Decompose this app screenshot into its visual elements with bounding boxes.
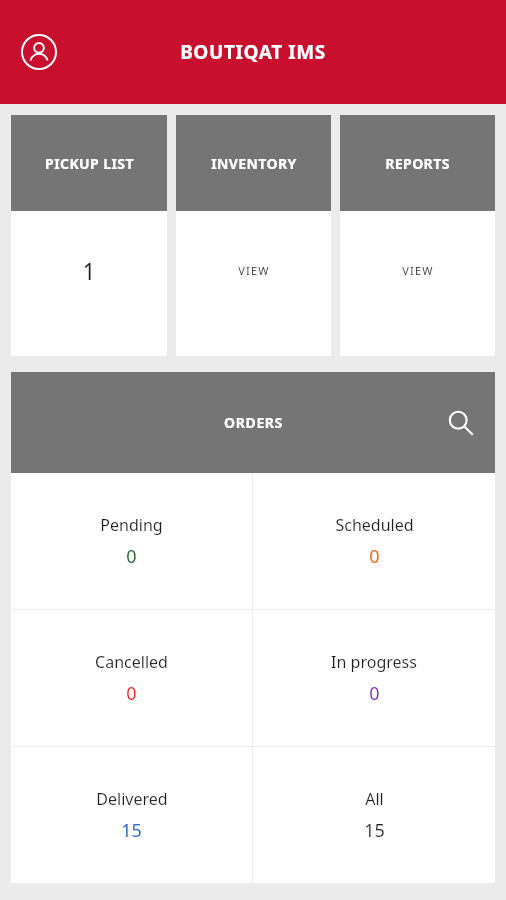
staticText: 1: [82, 255, 96, 286]
button[interactable]: INVENTORY: [176, 115, 331, 356]
button[interactable]: Pending: [11, 473, 252, 609]
staticText: PICKUP LIST: [45, 154, 134, 173]
button[interactable]: PICKUP LIST: [11, 115, 167, 356]
staticText: BOUTIQAT IMS: [180, 39, 326, 65]
button[interactable]: REPORTS: [340, 115, 495, 356]
button[interactable]: In progress: [253, 610, 495, 746]
staticText: 0: [126, 544, 137, 569]
staticText: INVENTORY: [211, 154, 297, 173]
staticText: In progress: [331, 651, 417, 673]
staticText: 0: [126, 681, 137, 706]
staticText: VIEW: [402, 263, 434, 278]
button[interactable]: All: [253, 747, 495, 883]
staticText: Delivered: [96, 788, 168, 810]
button[interactable]: Search: [439, 401, 483, 445]
staticText: VIEW: [238, 263, 270, 278]
staticText: REPORTS: [385, 154, 450, 173]
button[interactable]: Scheduled: [253, 473, 495, 609]
staticText: Scheduled: [335, 514, 414, 536]
staticText: ORDERS: [224, 413, 283, 432]
staticText: 0: [369, 681, 380, 706]
staticText: 0: [369, 544, 380, 569]
staticText: 15: [121, 818, 142, 843]
staticText: All: [365, 788, 384, 810]
button[interactable]: Delivered: [11, 747, 252, 883]
staticText: Pending: [100, 514, 163, 536]
button[interactable]: Cancelled: [11, 610, 252, 746]
button[interactable]: Account: [14, 27, 64, 77]
staticText: Cancelled: [95, 651, 168, 673]
staticText: 15: [364, 818, 385, 843]
